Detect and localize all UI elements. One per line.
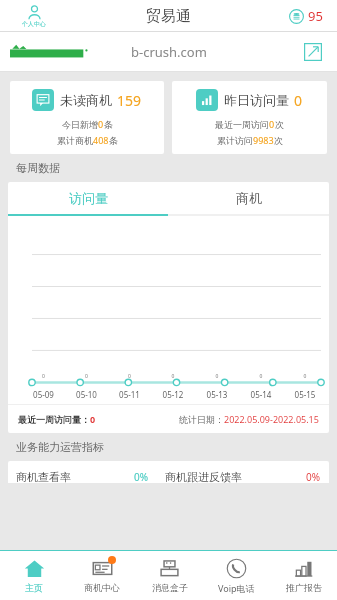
staticText: 05-09 <box>22 389 65 400</box>
staticText: 累计访问 <box>217 135 253 146</box>
staticText: 条 <box>109 135 118 146</box>
staticText: 最近一周访问量： <box>18 414 90 425</box>
staticText: 05-14 <box>239 389 283 400</box>
staticText: 今日新增 <box>62 119 98 130</box>
staticText: b-crush.com <box>131 43 207 61</box>
button[interactable]: 消息盒子 <box>136 551 203 600</box>
staticText: 次 <box>274 135 283 146</box>
staticText: 次 <box>275 119 284 130</box>
staticText: 昨日访问量 <box>224 92 289 108</box>
staticText: 贸易通 <box>146 7 191 26</box>
staticText: 0 <box>195 373 239 380</box>
button[interactable]: 访问量 <box>8 182 168 214</box>
staticText: 0 <box>90 413 96 425</box>
button[interactable]: 推广报告 <box>270 551 337 600</box>
staticText: 05-10 <box>65 389 108 400</box>
staticText: 访问量 <box>69 190 108 206</box>
staticText: 商机跟进反馈率 <box>165 470 242 483</box>
staticText: 0% <box>306 470 321 483</box>
button[interactable]: 余额 95 <box>289 7 323 25</box>
button[interactable]: 个人中心 <box>22 5 46 28</box>
staticText: 0 <box>98 118 104 130</box>
staticText: 0% <box>134 470 149 483</box>
staticText: 408 <box>93 134 109 146</box>
staticText: 95 <box>308 7 323 25</box>
staticText: 2022.05.09-2022.05.15 <box>224 413 319 425</box>
staticText: 业务能力运营指标 <box>16 440 104 454</box>
staticText: 05-12 <box>151 389 195 400</box>
staticText: 商机中心 <box>84 582 120 593</box>
staticText: 9983 <box>253 134 274 146</box>
staticText: 0 <box>239 373 283 380</box>
staticText: 每周数据 <box>16 161 60 175</box>
staticText: 主页 <box>25 582 43 593</box>
staticText: 0 <box>294 91 303 110</box>
staticText: 最近一周访问 <box>215 119 269 130</box>
button[interactable]: 商机 <box>168 182 329 214</box>
button[interactable]: Voip电话 <box>203 551 270 600</box>
staticText: 05-11 <box>108 389 151 400</box>
button[interactable]: 主页 <box>0 551 68 600</box>
button[interactable]: 昨日访问量 <box>172 81 327 154</box>
button[interactable]: 商机中心 <box>68 551 136 600</box>
staticText: 个人中心 <box>22 20 46 28</box>
staticText: 消息盒子 <box>152 582 188 593</box>
staticText: 0 <box>269 118 275 130</box>
button[interactable]: 商机查看率 <box>8 461 329 483</box>
staticText: 商机 <box>236 190 262 206</box>
staticText: 159 <box>117 91 142 110</box>
staticText: 05-13 <box>195 389 239 400</box>
staticText: 0 <box>22 373 65 380</box>
staticText: Voip电话 <box>218 582 255 594</box>
staticText: 累计商机 <box>57 135 93 146</box>
staticText: 推广报告 <box>286 582 322 593</box>
staticText: 0 <box>65 373 108 380</box>
staticText: 统计日期： <box>179 414 224 425</box>
button[interactable]: 未读商机 <box>10 81 164 154</box>
staticText: 05-15 <box>283 389 327 400</box>
staticText: 商机查看率 <box>16 470 71 483</box>
button[interactable]: 打开网站 <box>303 42 323 62</box>
staticText: 条 <box>104 119 113 130</box>
staticText: 0 <box>283 373 327 380</box>
staticText: 0 <box>108 373 151 380</box>
staticText: 0 <box>151 373 195 380</box>
staticText: 未读商机 <box>60 92 112 108</box>
